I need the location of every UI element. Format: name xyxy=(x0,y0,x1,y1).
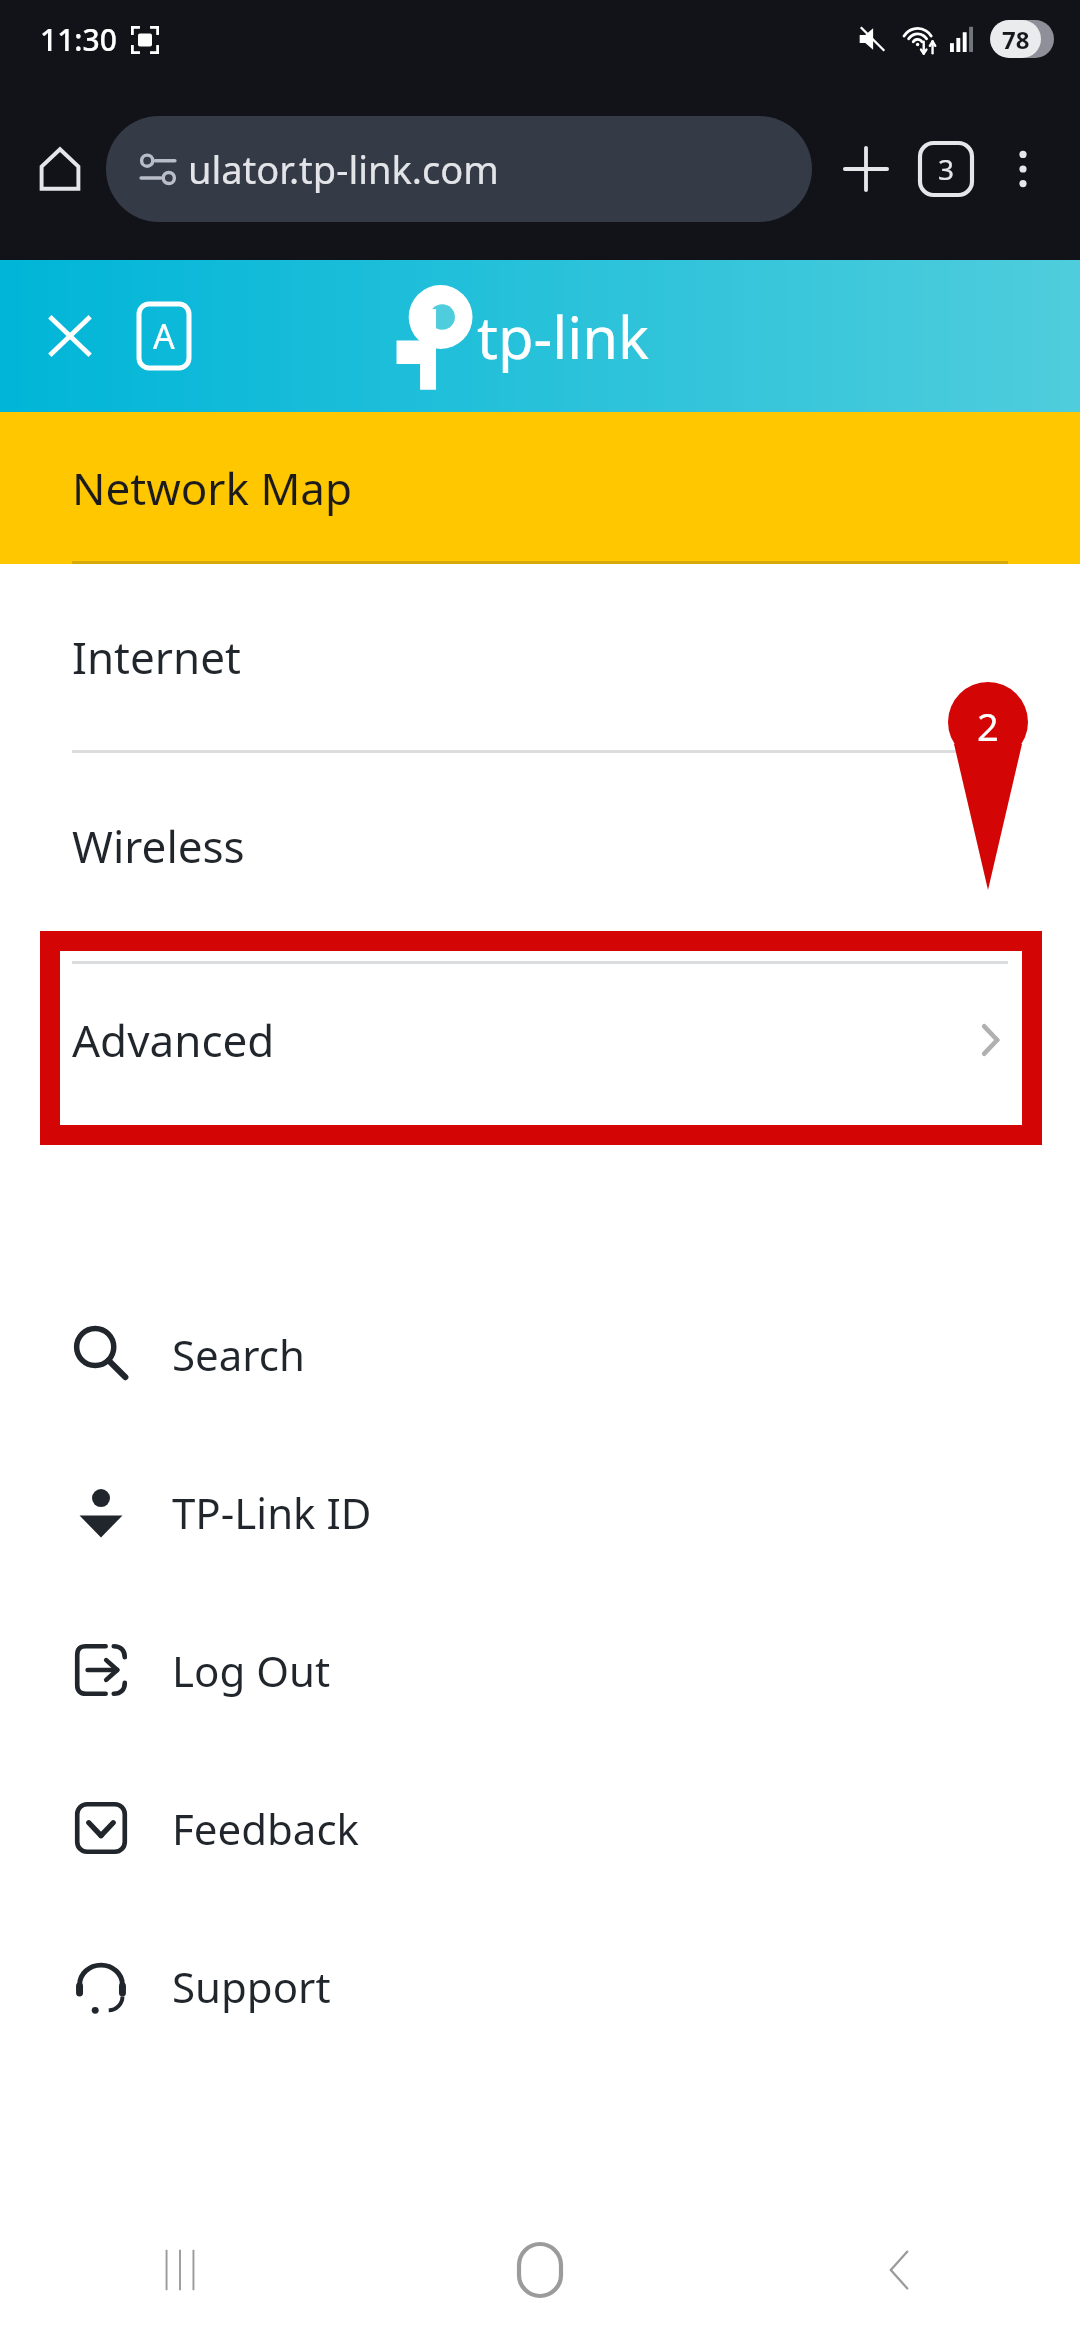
staticText: Network Map xyxy=(72,458,353,518)
staticText: TP-Link ID xyxy=(172,1484,372,1541)
button[interactable]: Feedback xyxy=(0,1749,1080,1907)
staticText: 78 xyxy=(1002,23,1030,56)
button[interactable]: Open tabs, 3 xyxy=(906,129,986,209)
staticText: 11:30 xyxy=(40,19,117,60)
button[interactable]: Advanced xyxy=(0,964,1080,1115)
staticText: ulator.tp-link.com xyxy=(188,143,499,195)
staticText: Support xyxy=(172,1958,331,2015)
button[interactable]: More options xyxy=(986,132,1060,206)
button[interactable]: Search xyxy=(0,1275,1080,1433)
button[interactable]: Back xyxy=(720,2200,1080,2340)
staticText: 2 xyxy=(977,700,999,752)
staticText: A xyxy=(153,313,175,359)
button[interactable]: ulator.tp-link.com xyxy=(106,116,812,222)
button[interactable]: Recent apps xyxy=(0,2200,360,2340)
staticText: Wireless xyxy=(72,816,245,876)
button[interactable]: Home xyxy=(20,129,100,209)
staticText: Log Out xyxy=(172,1642,331,1699)
button[interactable]: Home xyxy=(360,2200,720,2340)
button[interactable]: TP-Link ID xyxy=(0,1433,1080,1591)
button[interactable]: Support xyxy=(0,1907,1080,2065)
staticText: Internet xyxy=(72,627,241,687)
button[interactable]: Internet xyxy=(0,564,1080,750)
staticText: 3 xyxy=(938,150,955,188)
staticText: Feedback xyxy=(172,1800,359,1857)
button[interactable]: Language xyxy=(124,296,204,376)
staticText: Search xyxy=(172,1326,305,1383)
button[interactable]: Wireless xyxy=(0,753,1080,939)
staticText: tp-link xyxy=(477,297,650,376)
button[interactable]: Close xyxy=(30,296,110,376)
staticText: Advanced xyxy=(72,1010,275,1070)
button[interactable]: New tab xyxy=(826,129,906,209)
button[interactable]: Log Out xyxy=(0,1591,1080,1749)
